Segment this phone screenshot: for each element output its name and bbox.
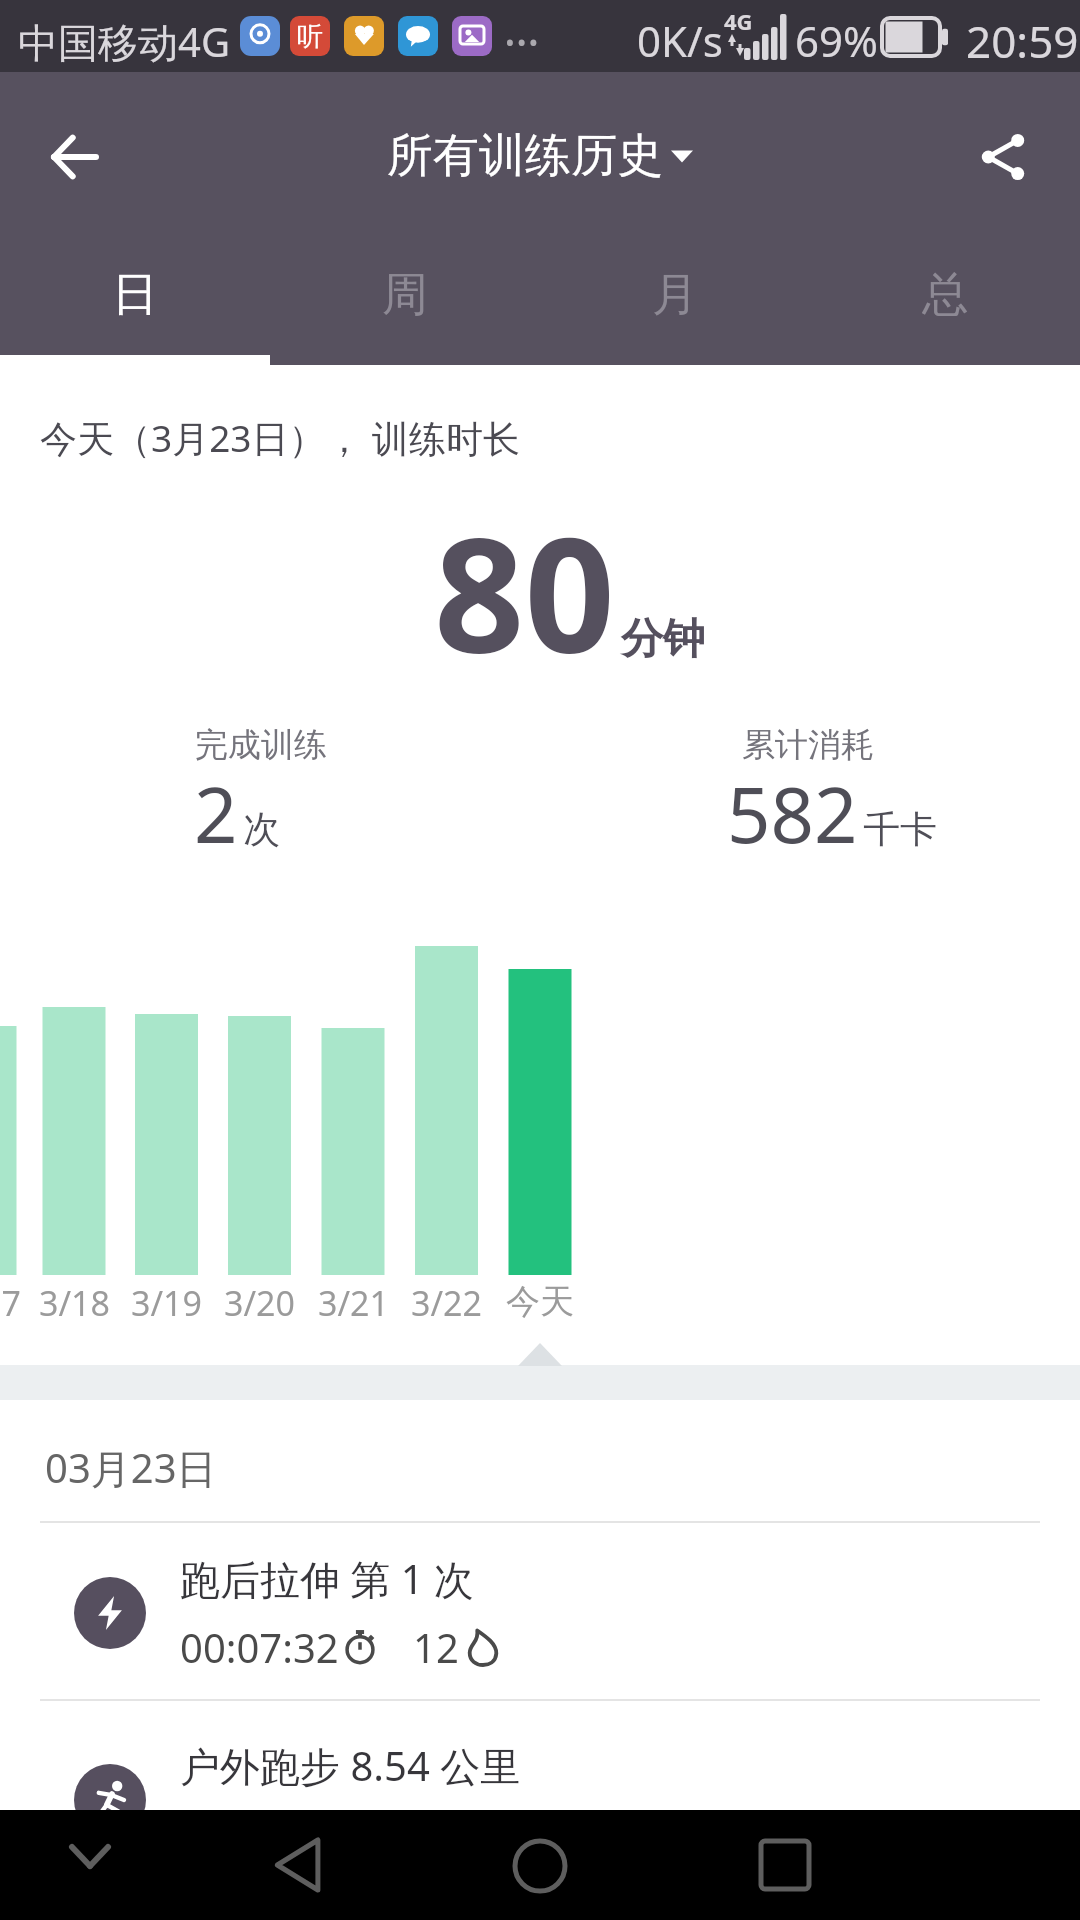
staticText: 次 [243, 806, 280, 853]
staticText: 周 [382, 266, 428, 324]
staticText: 月 [652, 266, 698, 324]
staticText: 日 [112, 266, 158, 324]
staticText: 3/19 [131, 1280, 202, 1326]
staticText: 累计消耗 [742, 724, 874, 766]
staticText: 3/18 [39, 1280, 110, 1326]
staticText: 跑后拉伸 第 1 次 [180, 1551, 475, 1606]
staticText: 今天（3月23日）， 训练时长 [40, 412, 521, 463]
button[interactable]: 日 [0, 240, 270, 365]
staticText: 00:07:32 [180, 1620, 339, 1674]
button[interactable]: 跑后拉伸 第 1 次 [0, 1551, 1080, 1674]
staticText: 03月23日 [45, 1440, 217, 1495]
button[interactable] [272, 1838, 326, 1892]
staticText: 3/17 [0, 1280, 21, 1326]
staticText: 总 [922, 266, 968, 324]
staticText: 今天 [506, 1280, 574, 1323]
staticText: 3/22 [411, 1280, 482, 1326]
staticText: 中国移动4G [18, 14, 230, 69]
staticText: 3/21 [318, 1280, 389, 1326]
button[interactable]: 周 [270, 240, 540, 365]
button[interactable]: 总 [810, 240, 1080, 365]
button[interactable] [980, 134, 1026, 180]
button[interactable] [52, 134, 98, 180]
staticText: 69% [795, 12, 878, 69]
button[interactable] [68, 1838, 112, 1882]
staticText: ••• [505, 24, 541, 59]
button[interactable]: 月 [540, 240, 810, 365]
staticText: 4G [724, 6, 753, 36]
button[interactable] [758, 1838, 812, 1892]
button[interactable]: 户外跑步 8.54 公里 [0, 1738, 1080, 1836]
staticText: 听 [297, 20, 323, 53]
staticText: 千卡 [863, 806, 937, 853]
staticText: 12 [413, 1620, 459, 1674]
staticText: 582 [727, 762, 858, 866]
staticText: 80 [434, 483, 615, 698]
staticText: 分钟 [621, 613, 705, 666]
staticText: 完成训练 [195, 724, 327, 766]
button[interactable] [512, 1838, 568, 1894]
button[interactable]: 所有训练历史 [387, 127, 693, 185]
staticText: 户外跑步 8.54 公里 [180, 1738, 521, 1793]
staticText: 0K/s [637, 12, 723, 69]
staticText: 3/20 [224, 1280, 295, 1326]
staticText: 所有训练历史 [387, 127, 663, 185]
staticText: 20:59 [966, 11, 1079, 71]
staticText: 2 [194, 762, 238, 866]
